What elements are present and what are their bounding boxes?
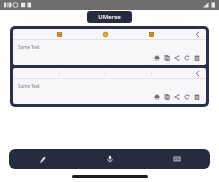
button[interactable]: Refresh — [183, 93, 191, 101]
button[interactable]: Tool 1 — [55, 69, 64, 78]
button[interactable]: More — [193, 30, 202, 39]
button[interactable]: Edit — [9, 149, 76, 169]
button[interactable]: Print — [153, 54, 161, 62]
button[interactable]: Tool 2 — [101, 30, 110, 39]
button[interactable]: Tool 2 — [101, 69, 110, 78]
button[interactable]: Tool 3 — [147, 30, 156, 39]
button[interactable]: Delete — [193, 54, 201, 62]
button[interactable]: UMerse — [87, 11, 132, 23]
button[interactable]: Tool 3 — [147, 69, 156, 78]
button[interactable]: More — [193, 69, 202, 78]
button[interactable]: Tool 1 — [13, 29, 206, 65]
staticText: Some Text — [18, 44, 40, 50]
staticText: Some Text — [18, 83, 40, 89]
button[interactable]: Tool 1 — [13, 68, 206, 104]
staticText: UMerse — [98, 13, 121, 21]
button[interactable]: Keyboard — [143, 149, 210, 169]
button[interactable]: Copy — [163, 54, 171, 62]
button[interactable]: Tool 1 — [55, 30, 64, 39]
button[interactable]: Share — [173, 93, 181, 101]
button[interactable]: Copy — [163, 93, 171, 101]
button[interactable]: Voice — [76, 149, 143, 169]
button[interactable]: Refresh — [183, 54, 191, 62]
button[interactable]: Share — [173, 54, 181, 62]
button[interactable]: Delete — [193, 93, 201, 101]
button[interactable]: Print — [153, 93, 161, 101]
